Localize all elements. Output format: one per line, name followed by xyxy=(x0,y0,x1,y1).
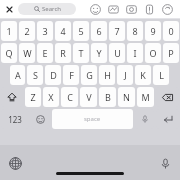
button[interactable]: 8 xyxy=(127,21,143,41)
staticText: 1 xyxy=(6,25,12,37)
staticText: Y xyxy=(96,47,102,59)
button[interactable]: C xyxy=(61,87,78,107)
button[interactable]: Emoji xyxy=(86,0,104,18)
staticText: space xyxy=(84,115,101,123)
button[interactable]: Change keyboard xyxy=(6,154,24,172)
staticText: S xyxy=(33,69,38,81)
button[interactable]: Search xyxy=(18,3,76,15)
button[interactable]: E xyxy=(37,43,53,63)
button[interactable]: W xyxy=(19,43,35,63)
button[interactable]: N xyxy=(118,87,135,107)
button[interactable]: Return xyxy=(156,109,179,129)
staticText: C xyxy=(67,91,73,103)
staticText: 8 xyxy=(132,25,138,37)
staticText: H xyxy=(104,69,111,81)
button[interactable]: Z xyxy=(25,87,41,107)
button[interactable]: Dictation xyxy=(135,109,154,129)
button[interactable]: R xyxy=(55,43,71,63)
staticText: U xyxy=(114,47,121,59)
button[interactable]: Digital Touch xyxy=(158,0,176,18)
button[interactable]: 7 xyxy=(109,21,125,41)
staticText: 5 xyxy=(78,25,84,37)
button[interactable]: S xyxy=(27,65,43,85)
staticText: X xyxy=(48,91,54,103)
staticText: L xyxy=(159,69,164,81)
button[interactable]: Close xyxy=(4,4,15,15)
button[interactable]: J xyxy=(117,65,133,85)
button[interactable]: B xyxy=(99,87,116,107)
staticText: B xyxy=(105,91,111,103)
button[interactable]: I xyxy=(127,43,143,63)
staticText: 6 xyxy=(96,25,102,37)
staticText: F xyxy=(69,69,74,81)
button[interactable]: Y xyxy=(91,43,107,63)
staticText: A xyxy=(15,69,21,81)
staticText: N xyxy=(123,91,130,103)
button[interactable]: A xyxy=(10,65,25,85)
staticText: V xyxy=(86,91,92,103)
staticText: K xyxy=(140,69,146,81)
staticText: 7 xyxy=(114,25,120,37)
staticText: 4 xyxy=(60,25,66,37)
button[interactable]: 3 xyxy=(37,21,53,41)
staticText: E xyxy=(42,47,48,59)
button[interactable]: space xyxy=(52,109,133,129)
button[interactable]: Backspace xyxy=(156,87,179,107)
staticText: O xyxy=(149,47,157,59)
button[interactable]: Dictation xyxy=(156,154,174,172)
staticText: 0 xyxy=(168,25,174,37)
button[interactable]: U xyxy=(109,43,125,63)
staticText: 9 xyxy=(150,25,156,37)
staticText: R xyxy=(60,47,66,59)
button[interactable]: 6 xyxy=(91,21,107,41)
button[interactable]: 5 xyxy=(73,21,89,41)
staticText: 123 xyxy=(8,114,22,125)
button[interactable]: O xyxy=(145,43,161,63)
staticText: D xyxy=(50,69,57,81)
button[interactable]: T xyxy=(73,43,89,63)
button[interactable]: M xyxy=(137,87,154,107)
button[interactable]: Stickers xyxy=(104,0,122,18)
staticText: Search xyxy=(42,5,61,13)
button[interactable]: Shift xyxy=(1,87,23,107)
staticText: M xyxy=(141,91,150,103)
button[interactable]: 4 xyxy=(55,21,71,41)
staticText: Q xyxy=(5,47,13,59)
staticText: P xyxy=(168,47,174,59)
button[interactable]: 1 xyxy=(1,21,17,41)
button[interactable]: 123 xyxy=(1,109,29,129)
button[interactable]: P xyxy=(163,43,179,63)
button[interactable]: Memoji xyxy=(140,0,158,18)
button[interactable]: K xyxy=(135,65,151,85)
button[interactable]: 9 xyxy=(145,21,161,41)
button[interactable]: G xyxy=(81,65,97,85)
staticText: J xyxy=(124,69,127,81)
button[interactable]: X xyxy=(43,87,59,107)
button[interactable]: Emoji keyboard xyxy=(31,109,50,129)
button[interactable]: F xyxy=(63,65,79,85)
button[interactable]: 2 xyxy=(19,21,35,41)
button[interactable]: Q xyxy=(1,43,17,63)
button[interactable]: H xyxy=(99,65,115,85)
staticText: T xyxy=(78,47,84,59)
staticText: 3 xyxy=(42,25,48,37)
button[interactable]: D xyxy=(45,65,61,85)
button[interactable]: 0 xyxy=(163,21,179,41)
staticText: I xyxy=(133,47,137,59)
staticText: W xyxy=(23,47,32,59)
button[interactable]: L xyxy=(153,65,169,85)
staticText: 2 xyxy=(24,25,30,37)
staticText: Z xyxy=(30,91,36,103)
button[interactable]: Camera xyxy=(122,0,140,18)
staticText: G xyxy=(86,69,93,81)
button[interactable]: V xyxy=(80,87,97,107)
